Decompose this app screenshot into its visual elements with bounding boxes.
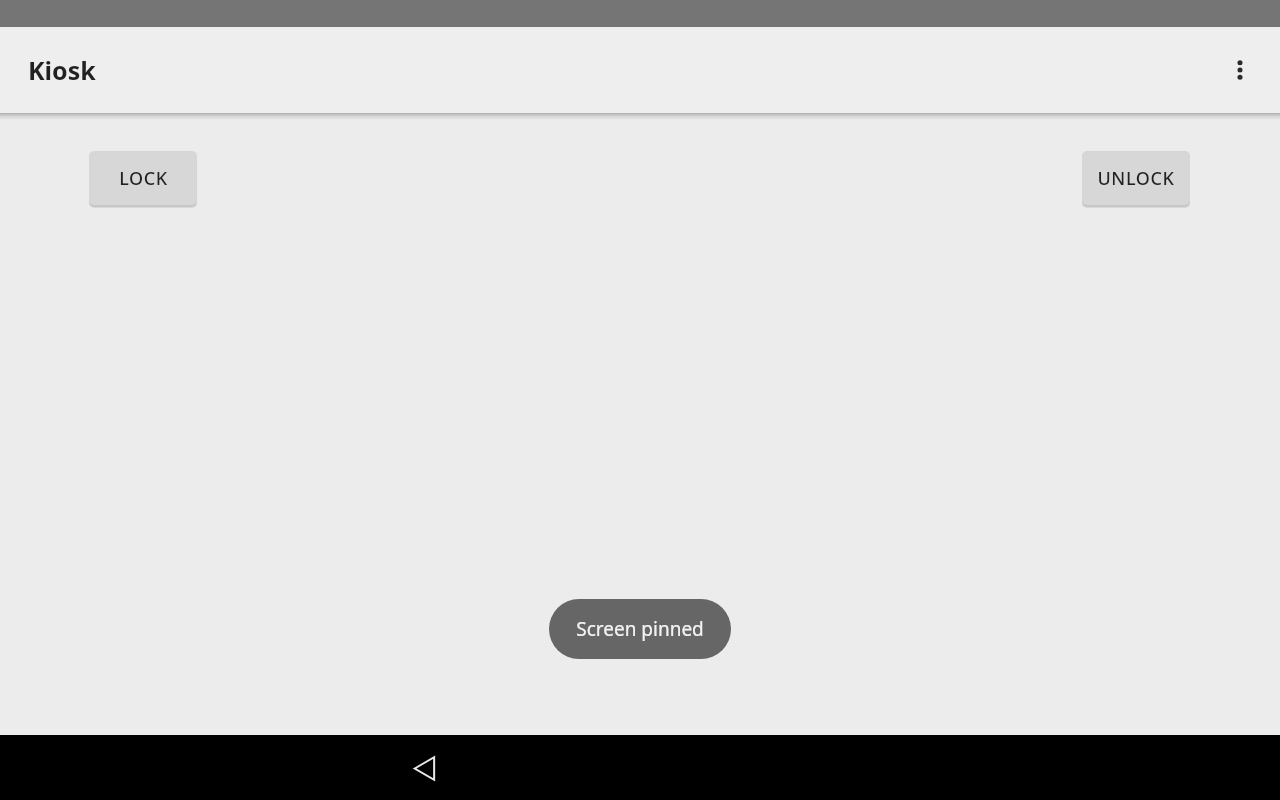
staticText: UNLOCK [1097, 166, 1175, 191]
staticText: Kiosk [28, 53, 96, 87]
button[interactable]: UNLOCK [1082, 151, 1190, 205]
button[interactable]: Back [401, 744, 449, 792]
staticText: Screen pinned [576, 616, 704, 642]
button[interactable]: More options [1216, 46, 1264, 94]
button[interactable]: LOCK [89, 151, 197, 205]
staticText: LOCK [119, 166, 168, 191]
